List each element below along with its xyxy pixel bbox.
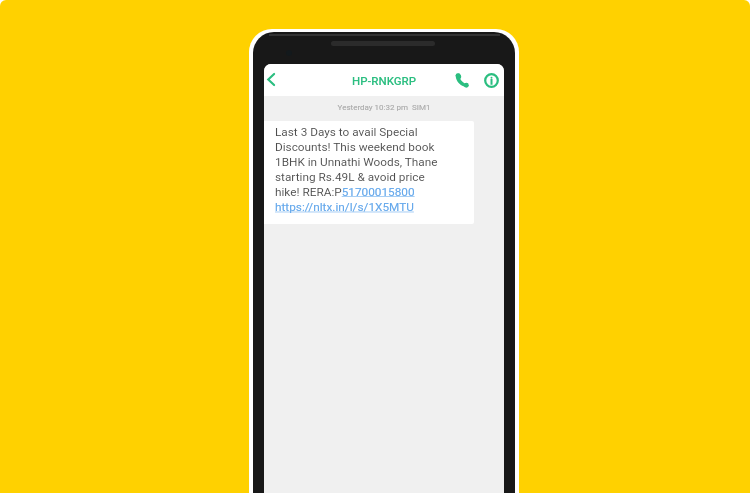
button[interactable]: Details [479,68,503,92]
staticText: Last 3 Days to avail Special Discounts! … [275,125,441,214]
button[interactable]: Back [264,67,290,93]
staticText: Yesterday 10:32 pm SIM1 [264,103,504,112]
button[interactable]: Last 3 Days to avail Special Discounts! … [264,121,474,224]
staticText: HP-RNKGRP [352,74,417,87]
button[interactable]: Call [450,68,474,92]
